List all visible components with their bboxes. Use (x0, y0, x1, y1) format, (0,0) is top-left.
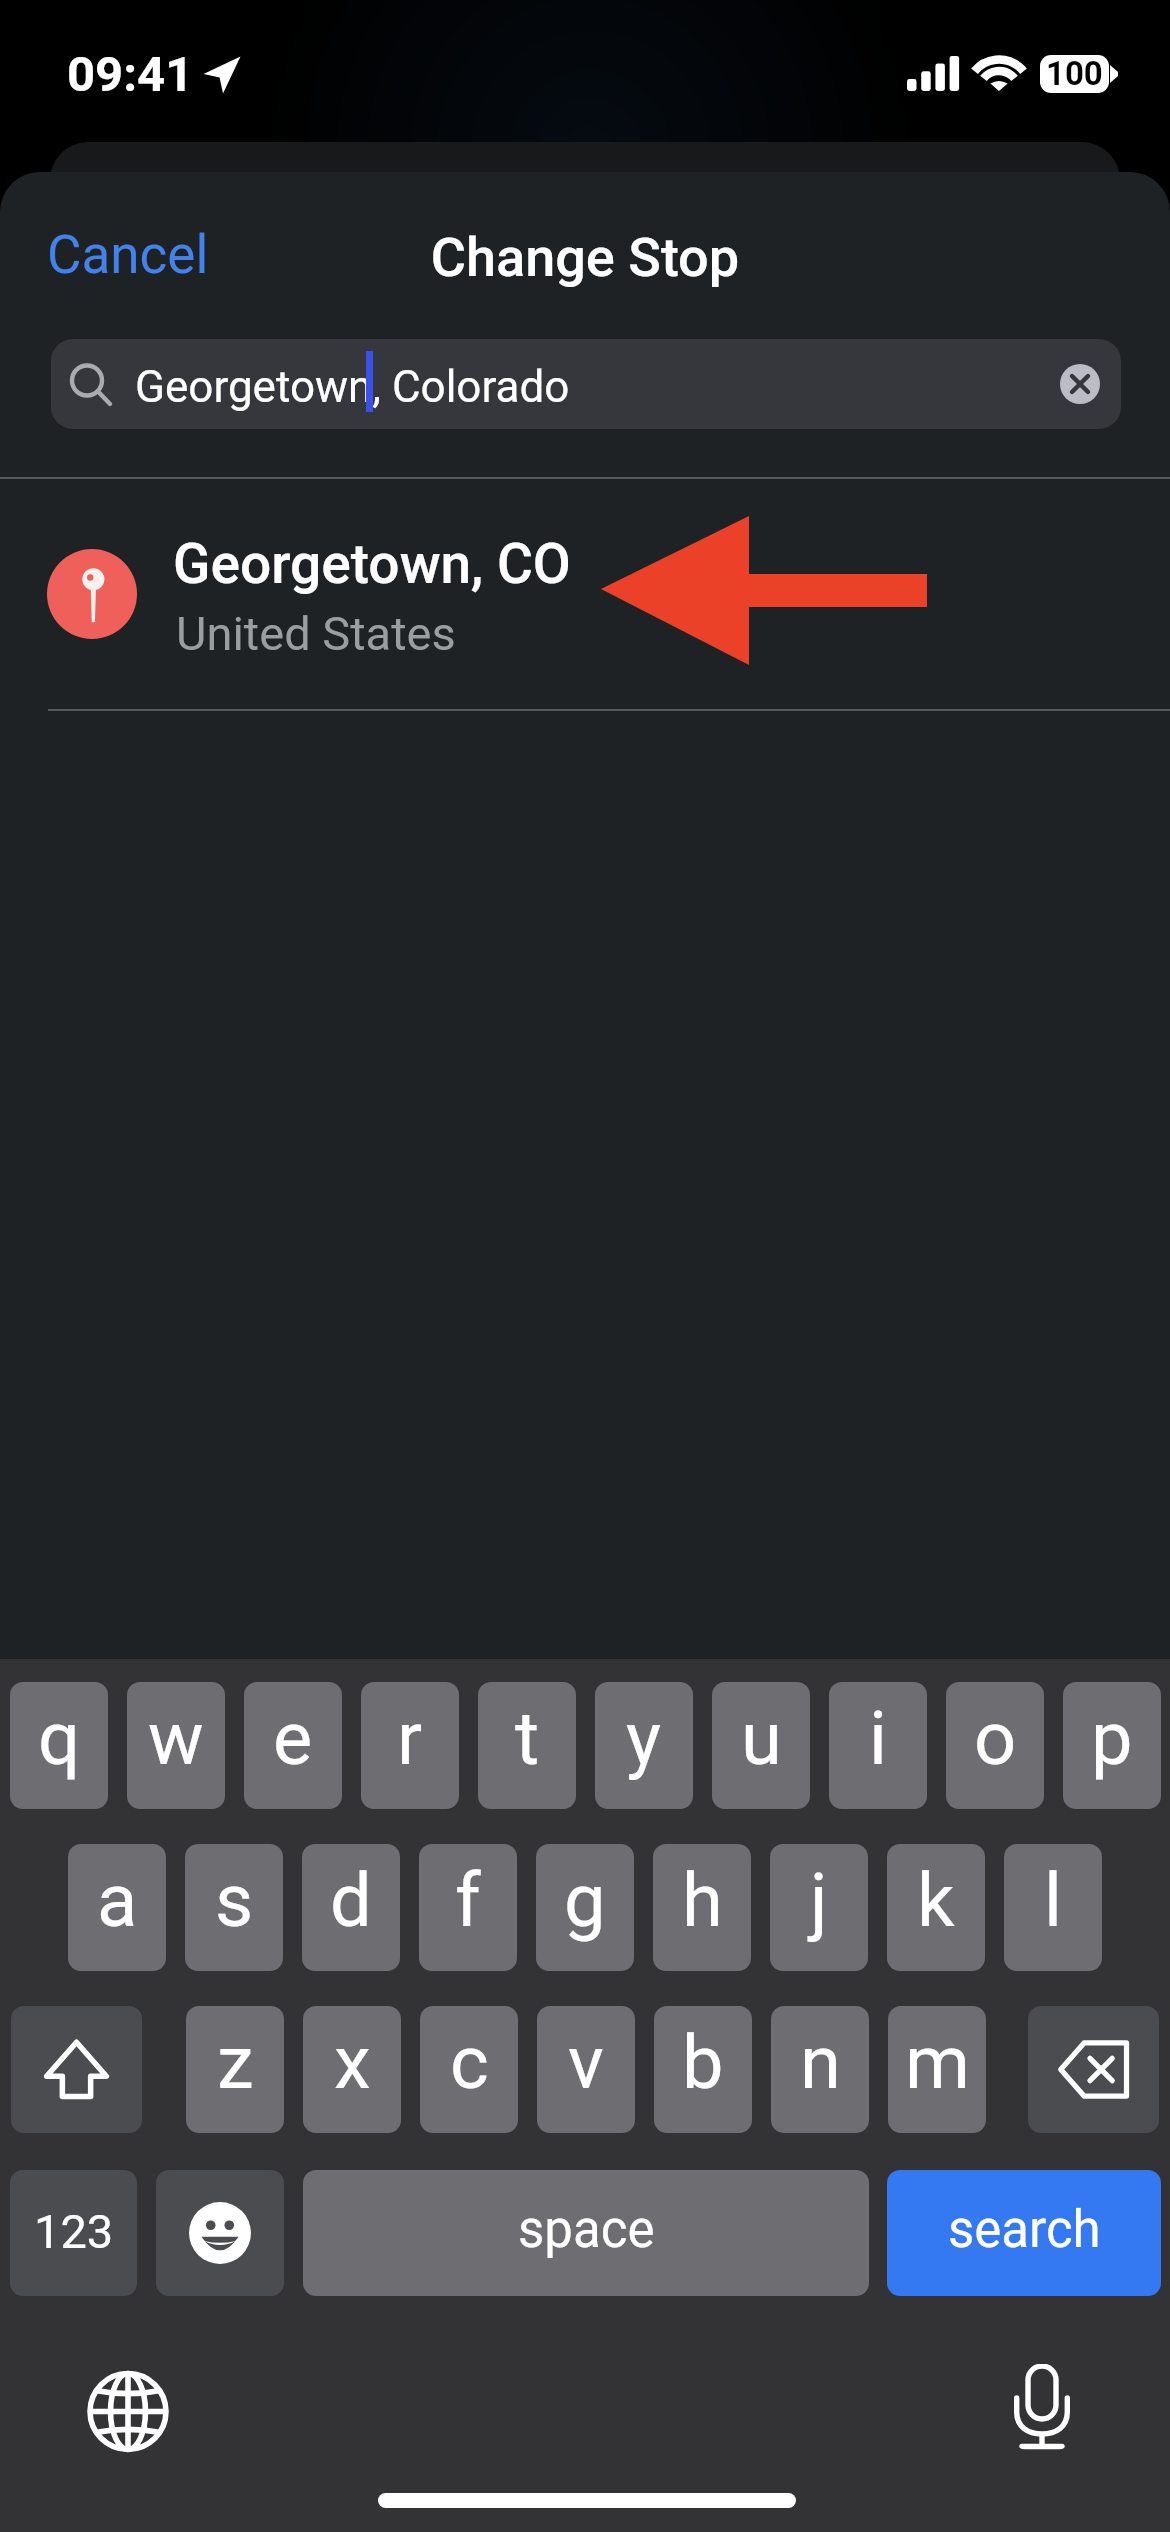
button[interactable]: n (771, 2006, 869, 2133)
button[interactable]: s (185, 1844, 283, 1971)
staticText: l (1044, 1857, 1062, 1944)
staticText: z (217, 2019, 254, 2106)
staticText: u (741, 1695, 782, 1782)
button[interactable]: Emoji keyboard (156, 2170, 284, 2296)
button[interactable]: d (302, 1844, 400, 1971)
staticText: h (682, 1857, 723, 1944)
staticText: o (974, 1695, 1017, 1782)
staticText: a (97, 1857, 138, 1944)
staticText: 100 (1046, 55, 1103, 92)
button[interactable]: Backspace (1028, 2006, 1159, 2133)
staticText: r (397, 1695, 423, 1782)
staticText: 123 (34, 2204, 114, 2259)
staticText: space (518, 2200, 655, 2260)
staticText: t (515, 1695, 540, 1782)
staticText: q (38, 1695, 81, 1782)
staticText: b (682, 2019, 724, 2106)
staticText: Change Stop (0, 226, 1170, 289)
button[interactable]: Cancel (34, 218, 224, 298)
staticText: search (948, 2200, 1101, 2260)
button[interactable]: k (887, 1844, 985, 1971)
button[interactable]: Shift (11, 2006, 142, 2133)
staticText: v (568, 2019, 604, 2106)
button[interactable]: z (186, 2006, 284, 2133)
button[interactable]: Georgetown, Colorado (51, 339, 1121, 429)
staticText: j (810, 1857, 828, 1944)
staticText: g (564, 1857, 606, 1944)
button[interactable]: b (654, 2006, 752, 2133)
button[interactable]: j (770, 1844, 868, 1971)
button[interactable]: g (536, 1844, 634, 1971)
staticText: Cancel (47, 224, 209, 286)
button[interactable]: l (1004, 1844, 1102, 1971)
staticText: w (148, 1695, 204, 1782)
button[interactable]: o (946, 1682, 1044, 1809)
button[interactable]: q (10, 1682, 108, 1809)
staticText: s (215, 1857, 254, 1944)
button[interactable]: r (361, 1682, 459, 1809)
staticText: 09:41 (67, 46, 194, 103)
staticText: m (905, 2019, 970, 2106)
button[interactable]: Dictation (1014, 2364, 1070, 2450)
staticText: i (869, 1695, 887, 1782)
button[interactable]: u (712, 1682, 810, 1809)
button[interactable]: Clear text (1060, 364, 1100, 404)
button[interactable]: 123 (10, 2170, 137, 2296)
staticText: Georgetown, CO (173, 532, 571, 596)
button[interactable]: w (127, 1682, 225, 1809)
button[interactable]: Switch keyboard (86, 2369, 170, 2454)
button[interactable]: c (420, 2006, 518, 2133)
button[interactable]: search (887, 2170, 1161, 2296)
staticText: d (330, 1857, 372, 1944)
button[interactable]: m (888, 2006, 986, 2133)
staticText: Georgetown, Colorado (135, 361, 570, 413)
staticText: United States (176, 606, 456, 661)
button[interactable]: a (68, 1844, 166, 1971)
staticText: p (1091, 1695, 1133, 1782)
staticText: n (800, 2019, 841, 2106)
button[interactable]: space (303, 2170, 869, 2296)
staticText: y (626, 1695, 662, 1782)
button[interactable]: f (419, 1844, 517, 1971)
button[interactable]: v (537, 2006, 635, 2133)
button[interactable]: Georgetown, CO (0, 479, 1170, 711)
staticText: c (450, 2019, 489, 2106)
button[interactable]: h (653, 1844, 751, 1971)
button[interactable]: x (303, 2006, 401, 2133)
staticText: k (917, 1857, 955, 1944)
button[interactable]: i (829, 1682, 927, 1809)
staticText: e (273, 1695, 313, 1782)
button[interactable]: e (244, 1682, 342, 1809)
button[interactable]: y (595, 1682, 693, 1809)
staticText: x (334, 2019, 371, 2106)
button[interactable]: p (1063, 1682, 1161, 1809)
staticText: f (455, 1857, 481, 1944)
button[interactable]: t (478, 1682, 576, 1809)
